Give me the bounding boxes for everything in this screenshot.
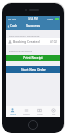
staticText: Start New Order bbox=[21, 68, 46, 72]
staticText: 100% bbox=[47, 17, 54, 20]
button[interactable]: Cards bbox=[33, 106, 46, 117]
staticText: Print Receipt bbox=[23, 56, 43, 60]
button[interactable]: Start New Order bbox=[6, 66, 60, 73]
staticText: #102 bbox=[50, 40, 58, 44]
staticText: Cash bbox=[10, 24, 18, 28]
staticText: BOOKING OPTIONS bbox=[9, 49, 33, 52]
staticText: Booking Created bbox=[13, 39, 40, 44]
button[interactable]: Orders bbox=[20, 106, 33, 117]
button[interactable]: Cash bbox=[6, 23, 19, 29]
button[interactable]: Home bbox=[6, 106, 19, 117]
button[interactable]: Booking Created bbox=[6, 38, 60, 45]
staticText: 3:54 PM bbox=[28, 17, 38, 21]
staticText: Me bbox=[52, 113, 56, 116]
staticText: Cards bbox=[37, 113, 43, 116]
button[interactable]: Me bbox=[47, 106, 60, 117]
staticText: Home bbox=[10, 113, 16, 116]
staticText: TRANSACTION COMPLETE bbox=[9, 34, 40, 37]
staticText: Success bbox=[26, 23, 41, 28]
staticText: Orders bbox=[23, 113, 30, 116]
button[interactable]: Print Receipt bbox=[6, 55, 60, 61]
staticText: No SIM bbox=[8, 17, 17, 20]
